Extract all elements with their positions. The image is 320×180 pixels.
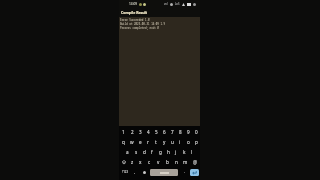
button[interactable]: , [131, 167, 139, 177]
button[interactable]: Shift [119, 157, 128, 167]
staticText: , [134, 169, 136, 175]
staticText: f [151, 149, 153, 155]
button[interactable]: 0 [192, 127, 200, 137]
button[interactable]: u [168, 137, 176, 147]
button[interactable]: m [181, 157, 190, 167]
button[interactable]: y [160, 137, 168, 147]
button[interactable]: d [140, 147, 148, 157]
button[interactable]: . [181, 167, 189, 177]
button[interactable]: j [172, 147, 180, 157]
button[interactable]: t [152, 137, 160, 147]
button[interactable]: 3 [136, 127, 144, 137]
button[interactable]: 1 [119, 127, 128, 137]
staticText: q [122, 139, 125, 145]
staticText: Compile Result [121, 10, 148, 15]
button[interactable]: ?123 [119, 167, 131, 177]
button[interactable]: x [136, 157, 145, 167]
staticText: d [143, 149, 146, 155]
button[interactable]: h [164, 147, 172, 157]
button[interactable]: Space [150, 169, 178, 176]
button[interactable]: z [128, 157, 136, 167]
button[interactable]: o [184, 137, 192, 147]
button[interactable]: 8 [176, 127, 184, 137]
staticText: 7 [171, 129, 174, 135]
staticText: 5 [155, 129, 158, 135]
staticText: j [175, 149, 177, 155]
staticText: 3 [139, 129, 142, 135]
staticText: v [157, 159, 160, 165]
button[interactable]: 6 [160, 127, 168, 137]
staticText: t [155, 139, 157, 145]
staticText: h [167, 149, 170, 155]
button[interactable]: n [172, 157, 181, 167]
staticText: 2 [131, 129, 134, 135]
button[interactable]: c [145, 157, 154, 167]
staticText: y [163, 139, 166, 145]
staticText: 9 [187, 129, 190, 135]
staticText: i [179, 139, 181, 145]
button[interactable]: 4 [144, 127, 152, 137]
staticText: 1 [122, 129, 125, 135]
button[interactable]: q [119, 137, 128, 147]
button[interactable]: g [156, 147, 164, 157]
staticText: LoS [175, 2, 180, 6]
button[interactable]: r [144, 137, 152, 147]
button[interactable]: e [136, 137, 144, 147]
button[interactable]: Emoji [140, 167, 148, 177]
staticText: m [183, 159, 188, 165]
staticText: e [139, 139, 142, 145]
button[interactable]: l [188, 147, 196, 157]
button[interactable]: Enter [190, 169, 199, 176]
button[interactable]: b [163, 157, 172, 167]
button[interactable]: w [128, 137, 136, 147]
staticText: w [130, 139, 134, 145]
staticText: @ [193, 159, 198, 165]
staticText: Build at 2025-08-31 14:09 1.9 [120, 22, 166, 26]
button[interactable]: f [148, 147, 156, 157]
button[interactable]: 9 [184, 127, 192, 137]
staticText: n [175, 159, 178, 165]
staticText: a [126, 149, 129, 155]
button[interactable]: v [154, 157, 163, 167]
button[interactable]: a [123, 147, 132, 157]
staticText: vol [164, 2, 168, 6]
staticText: 8 [179, 129, 182, 135]
staticText: 6 [163, 129, 166, 135]
staticText: Process completed; exit 0 [120, 26, 159, 30]
staticText: o [187, 139, 190, 145]
staticText: p [195, 139, 198, 145]
staticText: s [135, 149, 138, 155]
button[interactable]: s [132, 147, 140, 157]
staticText: z [131, 159, 134, 165]
staticText: b [166, 159, 169, 165]
button[interactable]: @ [190, 157, 200, 167]
staticText: 4 [147, 129, 150, 135]
button[interactable]: 2 [128, 127, 136, 137]
button[interactable]: 7 [168, 127, 176, 137]
staticText: g [159, 149, 162, 155]
staticText: 0 [195, 129, 198, 135]
staticText: . [184, 169, 186, 175]
staticText: u [171, 139, 174, 145]
staticText: l [191, 149, 193, 155]
staticText: Error Succeeded 1.0 [120, 18, 150, 22]
staticText: r [147, 139, 149, 145]
button[interactable]: k [180, 147, 188, 157]
staticText: x [139, 159, 142, 165]
button[interactable]: i [176, 137, 184, 147]
button[interactable]: p [192, 137, 200, 147]
button[interactable]: 5 [152, 127, 160, 137]
staticText: ?123 [122, 170, 129, 174]
staticText: k [183, 149, 186, 155]
staticText: c [148, 159, 151, 165]
staticText: 14:09 [129, 2, 138, 6]
